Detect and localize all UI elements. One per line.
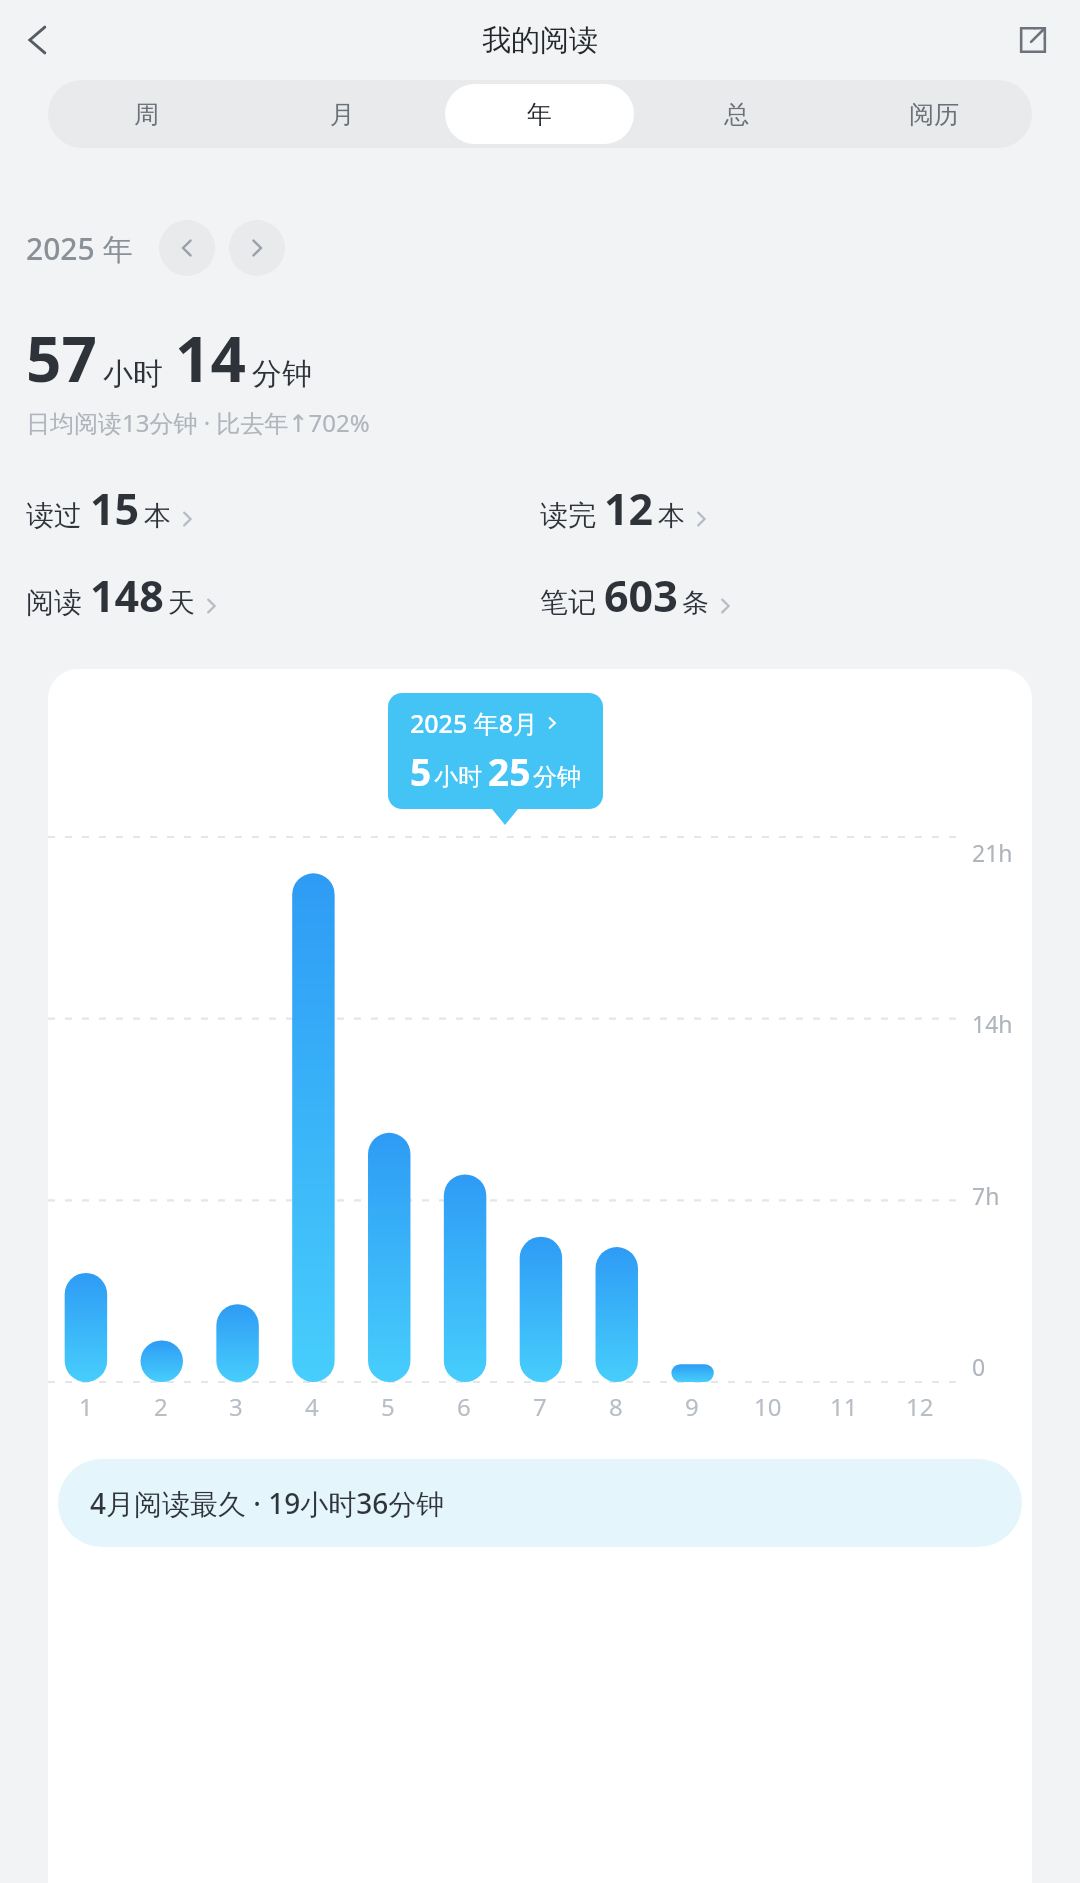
staticText: 14h xyxy=(972,1008,1013,1039)
staticText: 7h xyxy=(972,1180,1000,1211)
button[interactable]: Share xyxy=(1004,11,1062,69)
staticText: 57 xyxy=(26,316,97,400)
staticText: 2025 年 xyxy=(26,228,133,269)
staticText: 14 xyxy=(175,316,246,400)
button[interactable]: 年 xyxy=(445,84,634,144)
staticText: 小时 xyxy=(434,762,482,792)
staticText: 6 xyxy=(457,1390,471,1423)
staticText: 年 xyxy=(527,99,552,130)
staticText: 分钟 xyxy=(252,355,312,393)
button[interactable]: 总 xyxy=(642,84,831,144)
button[interactable]: Back xyxy=(8,10,68,70)
staticText: 我的阅读 xyxy=(482,22,598,59)
staticText: 条 xyxy=(682,586,709,620)
staticText: 月 xyxy=(330,99,355,130)
staticText: 12 xyxy=(604,479,654,538)
staticText: 笔记 xyxy=(540,585,596,620)
staticText: 5 xyxy=(410,746,432,796)
staticText: 天 xyxy=(168,586,195,620)
button[interactable]: 2025 年8月 xyxy=(388,693,603,809)
staticText: 3 xyxy=(229,1390,243,1423)
staticText: 周 xyxy=(134,99,159,130)
staticText: 603 xyxy=(604,566,678,625)
staticText: 阅历 xyxy=(909,99,959,130)
staticText: 0 xyxy=(972,1351,986,1382)
staticText: 小时 xyxy=(103,355,163,393)
staticText: 读完 xyxy=(540,498,596,533)
staticText: 9 xyxy=(685,1390,699,1423)
button[interactable]: 阅读 xyxy=(26,566,540,625)
staticText: 4 xyxy=(305,1390,319,1423)
staticText: 5 xyxy=(381,1390,395,1423)
staticText: 12 xyxy=(906,1390,934,1423)
button[interactable]: 周 xyxy=(52,84,240,144)
staticText: 2 xyxy=(154,1390,168,1423)
button[interactable]: 读完 xyxy=(540,479,1054,538)
staticText: 10 xyxy=(754,1390,782,1423)
button[interactable]: 笔记 xyxy=(540,566,1054,625)
button[interactable]: 读过 xyxy=(26,479,540,538)
staticText: 阅读 xyxy=(26,585,82,620)
button[interactable]: 阅历 xyxy=(839,84,1028,144)
staticText: 2025 年8月 xyxy=(410,706,539,740)
staticText: 25 xyxy=(488,746,531,796)
staticText: 日均阅读13分钟 · 比去年↑702% xyxy=(26,406,370,439)
staticText: 11 xyxy=(830,1390,858,1423)
staticText: 总 xyxy=(724,99,749,130)
staticText: 本 xyxy=(144,499,171,533)
button[interactable]: Previous year xyxy=(159,220,215,276)
staticText: 21h xyxy=(972,837,1013,868)
staticText: 15 xyxy=(90,479,140,538)
staticText: 本 xyxy=(658,499,685,533)
staticText: 148 xyxy=(90,566,164,625)
staticText: 读过 xyxy=(26,498,82,533)
button[interactable]: Next year xyxy=(229,220,285,276)
staticText: 1 xyxy=(79,1390,93,1423)
staticText: 4月阅读最久 · 19小时36分钟 xyxy=(90,1484,445,1522)
staticText: 7 xyxy=(533,1390,547,1423)
staticText: 分钟 xyxy=(533,762,581,792)
staticText: 8 xyxy=(609,1390,623,1423)
button[interactable]: 月 xyxy=(248,84,437,144)
button[interactable]: 4月阅读最久 · 19小时36分钟 xyxy=(58,1459,1022,1547)
